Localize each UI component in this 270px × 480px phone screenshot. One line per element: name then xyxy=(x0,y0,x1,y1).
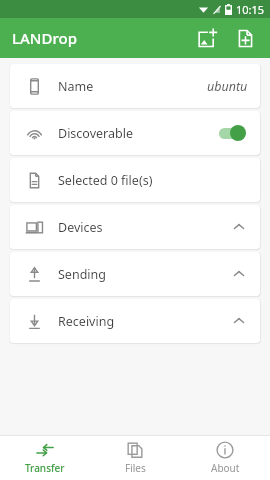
staticText: Discoverable xyxy=(58,125,133,142)
staticText: Name xyxy=(58,78,94,95)
button[interactable]: Files xyxy=(90,436,180,480)
button[interactable]: Add file xyxy=(228,21,262,55)
button[interactable]: Transfer xyxy=(0,436,90,480)
button[interactable]: Discoverable toggle xyxy=(216,120,250,146)
staticText: Files xyxy=(125,461,146,475)
button[interactable]: Selected 0 file(s) xyxy=(10,158,260,202)
button[interactable]: Receiving xyxy=(10,299,260,343)
button[interactable]: Sending xyxy=(10,252,260,296)
staticText: LANDrop xyxy=(12,28,77,48)
staticText: Sending xyxy=(58,266,106,283)
button[interactable]: Name xyxy=(10,64,260,108)
staticText: Devices xyxy=(58,219,103,236)
button[interactable]: Discoverable xyxy=(10,111,260,155)
staticText: Selected 0 file(s) xyxy=(58,172,153,189)
button[interactable]: About xyxy=(180,436,270,480)
staticText: 10:15 xyxy=(236,2,265,17)
button[interactable]: Add image xyxy=(190,21,224,55)
staticText: Receiving xyxy=(58,313,115,330)
staticText: About xyxy=(211,461,240,475)
staticText: Transfer xyxy=(25,461,65,475)
staticText: ubuntu xyxy=(207,78,248,95)
button[interactable]: Devices xyxy=(10,205,260,249)
